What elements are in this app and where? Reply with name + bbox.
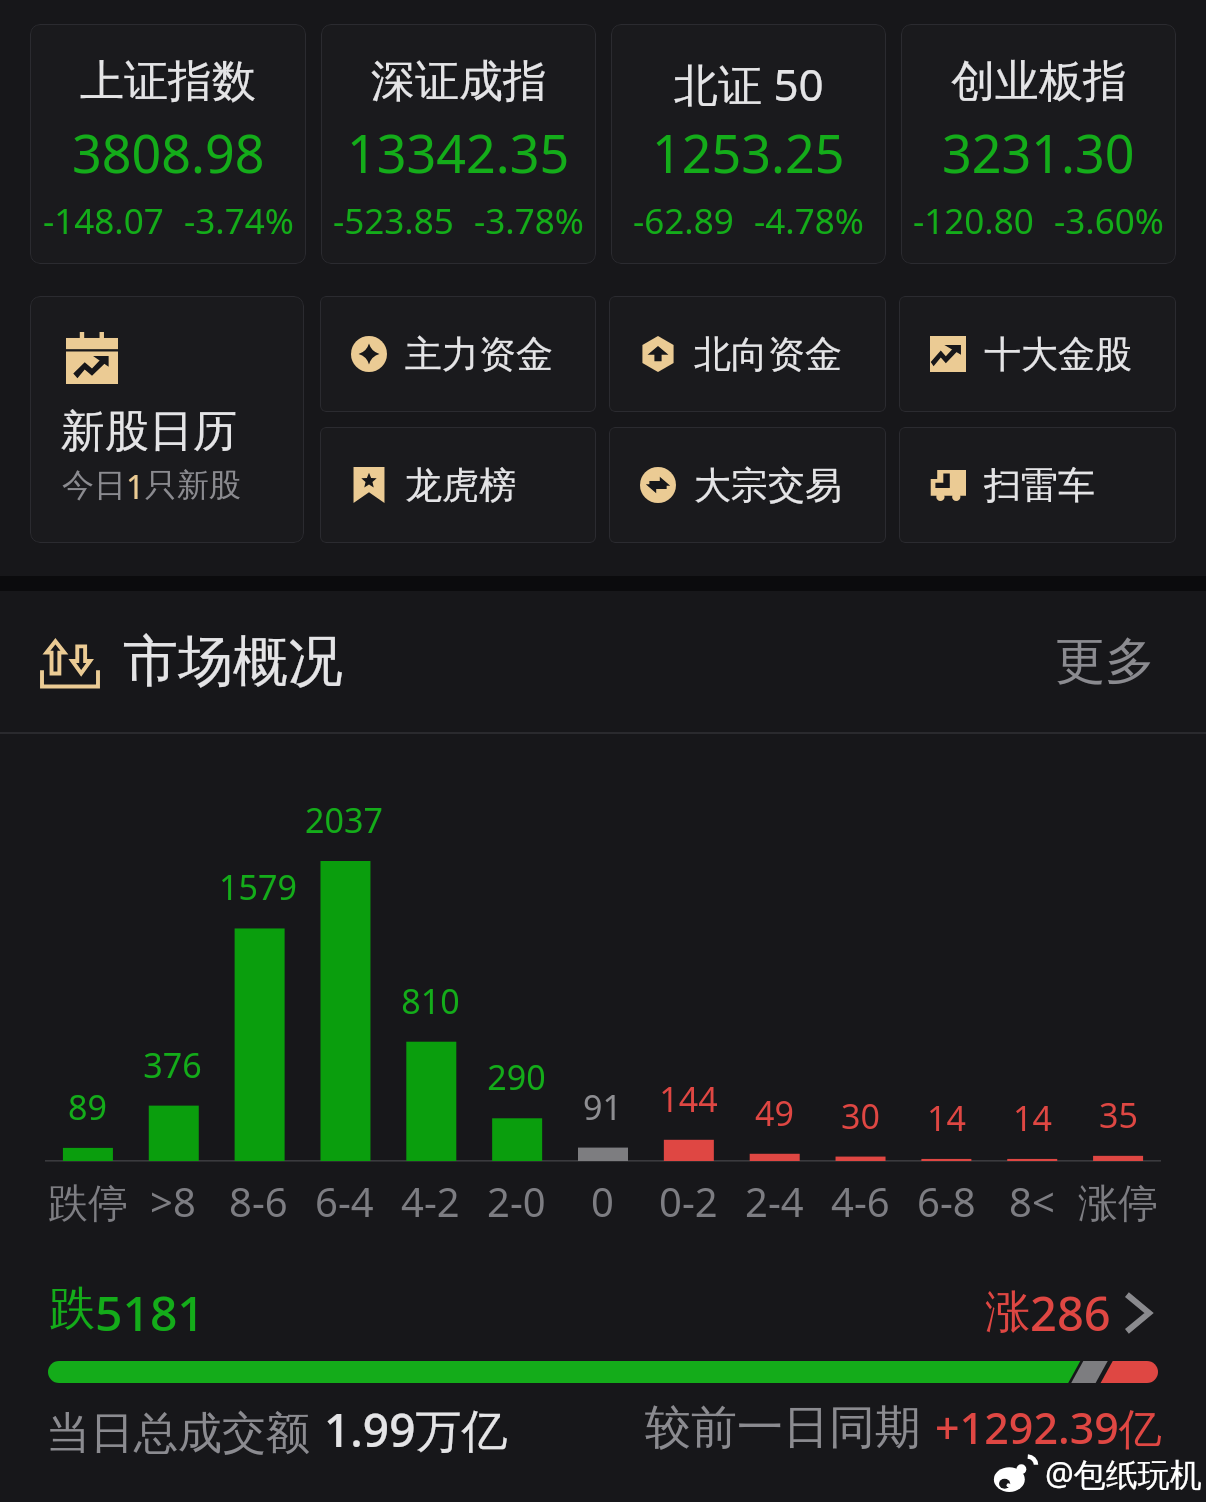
- staticText: 49: [755, 1090, 794, 1136]
- staticText: 91: [583, 1084, 622, 1130]
- staticText: 1.99万亿: [324, 1398, 508, 1461]
- staticText: 较前一日同期: [645, 1399, 921, 1457]
- staticText: 涨: [985, 1284, 1030, 1341]
- staticText: 13342.35: [347, 117, 570, 188]
- staticText: 大宗交易: [694, 462, 842, 509]
- staticText: 扫雷车: [984, 462, 1095, 509]
- button[interactable]: 十大金股: [899, 296, 1176, 412]
- staticText: @包纸玩机: [1045, 1452, 1202, 1496]
- staticText: 今日: [62, 465, 126, 505]
- button[interactable]: 创业板指: [901, 24, 1176, 264]
- staticText: 主力资金: [405, 331, 553, 378]
- button[interactable]: 上证指数: [30, 24, 306, 264]
- staticText: 2-4: [745, 1174, 804, 1228]
- other: View details: [1123, 1293, 1151, 1333]
- staticText: 创业板指: [951, 54, 1127, 109]
- button[interactable]: 大宗交易: [609, 427, 886, 543]
- staticText: 龙虎榜: [405, 462, 516, 509]
- staticText: -523.85: [333, 197, 454, 245]
- staticText: 8-6: [229, 1174, 288, 1228]
- staticText: -62.89: [633, 197, 734, 245]
- staticText: 5181: [95, 1280, 205, 1345]
- staticText: 1579: [219, 864, 297, 910]
- staticText: 涨停: [1078, 1178, 1158, 1228]
- staticText: 更多: [1055, 630, 1155, 693]
- staticText: -3.78%: [474, 197, 584, 245]
- staticText: -4.78%: [754, 197, 864, 245]
- staticText: 144: [659, 1076, 718, 1122]
- staticText: 30: [841, 1093, 880, 1139]
- staticText: 6-4: [315, 1174, 374, 1228]
- staticText: -120.80: [913, 197, 1034, 245]
- button[interactable]: 龙虎榜: [320, 427, 596, 543]
- staticText: -3.60%: [1054, 197, 1164, 245]
- staticText: 深证成指: [371, 54, 547, 109]
- button[interactable]: 北向资金: [609, 296, 886, 412]
- staticText: 376: [143, 1042, 202, 1088]
- staticText: 北证 50: [674, 54, 824, 114]
- staticText: 0-2: [659, 1174, 718, 1228]
- staticText: 跌: [49, 1280, 95, 1338]
- staticText: 北向资金: [694, 331, 842, 378]
- button[interactable]: 扫雷车: [899, 427, 1176, 543]
- button[interactable]: 主力资金: [320, 296, 596, 412]
- staticText: 6-8: [917, 1174, 976, 1228]
- button[interactable]: 跌: [49, 1280, 1151, 1345]
- staticText: 35: [1099, 1092, 1138, 1138]
- staticText: 8<: [1009, 1174, 1055, 1228]
- button[interactable]: 市场概况: [0, 591, 1206, 732]
- staticText: >8: [150, 1174, 196, 1228]
- staticText: 跌停: [48, 1178, 128, 1228]
- staticText: 14: [927, 1095, 966, 1141]
- staticText: 上证指数: [80, 54, 256, 109]
- staticText: -148.07: [43, 197, 164, 245]
- button[interactable]: 北证 50: [611, 24, 886, 264]
- staticText: 只新股: [145, 465, 241, 505]
- staticText: 当日总成交额: [46, 1406, 310, 1461]
- button[interactable]: 新股日历: [30, 296, 304, 543]
- staticText: 286: [1030, 1281, 1111, 1345]
- staticText: 4-2: [401, 1174, 460, 1228]
- staticText: 290: [487, 1054, 546, 1100]
- staticText: 3808.98: [72, 117, 265, 188]
- staticText: -3.74%: [184, 197, 294, 245]
- staticText: 1: [126, 465, 145, 509]
- staticText: 2037: [305, 797, 383, 843]
- staticText: 市场概况: [123, 627, 343, 696]
- staticText: 新股日历: [61, 404, 237, 459]
- staticText: 2-0: [487, 1174, 546, 1228]
- staticText: 0: [591, 1174, 614, 1228]
- staticText: 89: [68, 1084, 107, 1130]
- staticText: 1253.25: [652, 117, 845, 188]
- button[interactable]: 深证成指: [321, 24, 596, 264]
- staticText: 810: [401, 978, 460, 1024]
- staticText: 十大金股: [984, 331, 1132, 378]
- staticText: 3231.30: [942, 117, 1135, 188]
- staticText: 4-6: [831, 1174, 890, 1228]
- staticText: 14: [1013, 1095, 1052, 1141]
- staticText: +1292.39亿: [935, 1398, 1162, 1457]
